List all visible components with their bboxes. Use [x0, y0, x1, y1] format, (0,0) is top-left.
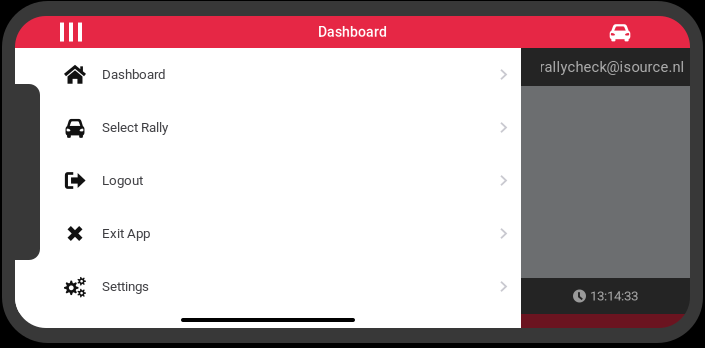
staticText: Exit App	[102, 226, 150, 241]
staticText: Select Rally	[102, 120, 168, 135]
staticText: 13:14:33	[590, 288, 638, 304]
staticText: Settings	[102, 279, 149, 294]
staticText: Dashboard	[318, 24, 387, 40]
button[interactable]: Select Rally	[15, 101, 521, 154]
staticText: Dashboard	[102, 67, 166, 82]
button[interactable]: Settings	[15, 260, 521, 313]
button[interactable]: Select Rally	[594, 16, 690, 48]
staticText: rallycheck@isource.nl	[539, 58, 684, 76]
button[interactable]: Exit App	[15, 207, 521, 260]
staticText: Logout	[102, 173, 143, 188]
button[interactable]: Logout	[15, 154, 521, 207]
button[interactable]: Dashboard	[15, 48, 521, 101]
button[interactable]: Menu	[15, 16, 96, 48]
